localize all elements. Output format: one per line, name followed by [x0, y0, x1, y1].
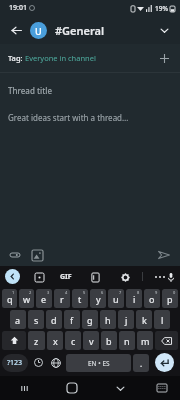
staticText: 3 — [47, 290, 50, 295]
button[interactable]: Shift — [2, 331, 26, 350]
button[interactable]: c — [65, 331, 81, 350]
button[interactable]: Emoji — [29, 351, 47, 374]
button[interactable]: k — [136, 310, 152, 329]
staticText: Tag: — [8, 53, 25, 63]
button[interactable]: Home — [48, 376, 96, 400]
button[interactable]: U — [30, 22, 47, 39]
staticText: Everyone in channel — [25, 53, 96, 63]
staticText: o — [149, 293, 155, 305]
button[interactable]: Add tag — [156, 50, 172, 66]
staticText: 4 — [65, 290, 68, 295]
button[interactable]: f — [64, 310, 80, 329]
button[interactable]: Close toolbar — [5, 269, 20, 284]
staticText: 6 — [101, 290, 104, 295]
button[interactable]: ?123 — [2, 354, 28, 372]
button[interactable]: More — [153, 270, 167, 284]
staticText: r — [60, 293, 64, 305]
button[interactable]: 3 — [36, 289, 52, 308]
staticText: w — [23, 293, 31, 305]
staticText: y — [96, 293, 101, 305]
staticText: g — [87, 314, 93, 326]
button[interactable]: 8 — [126, 289, 142, 308]
button[interactable]: Hide keyboard — [96, 376, 144, 400]
staticText: j — [125, 314, 128, 326]
staticText: 19:01 — [9, 3, 27, 13]
staticText: #General — [55, 23, 154, 38]
button[interactable]: v — [83, 331, 99, 350]
staticText: s — [34, 314, 39, 326]
staticText: c — [71, 335, 76, 347]
button[interactable]: 0 — [162, 289, 178, 308]
staticText: e — [41, 293, 47, 305]
button[interactable]: 7 — [108, 289, 124, 308]
staticText: EN • ES — [88, 359, 110, 368]
staticText: ?123 — [7, 358, 23, 368]
staticText: f — [70, 314, 74, 326]
button[interactable]: a — [10, 310, 26, 329]
button[interactable]: Settings — [118, 270, 132, 284]
staticText: . — [140, 358, 143, 369]
staticText: l — [161, 314, 164, 326]
button[interactable]: j — [118, 310, 134, 329]
button[interactable]: z — [28, 331, 45, 350]
button[interactable]: Tag: — [8, 53, 156, 63]
staticText: n — [124, 335, 130, 347]
staticText: 9 — [155, 290, 158, 295]
button[interactable]: x — [47, 331, 63, 350]
staticText: m — [141, 335, 150, 347]
button[interactable]: Stickers — [32, 270, 46, 284]
staticText: t — [78, 293, 82, 305]
button[interactable]: Back — [6, 20, 26, 40]
staticText: v — [89, 335, 94, 347]
button[interactable]: g — [82, 310, 98, 329]
button[interactable]: b — [101, 331, 117, 350]
button[interactable]: 5 — [72, 289, 88, 308]
staticText: 2 — [29, 290, 32, 295]
button[interactable]: d — [46, 310, 62, 329]
staticText: 8 — [137, 290, 140, 295]
button[interactable]: 6 — [90, 289, 106, 308]
button[interactable]: Clipboard — [88, 270, 102, 284]
button[interactable]: Send — [155, 246, 173, 264]
button[interactable]: EN • ES — [66, 354, 131, 372]
staticText: x — [53, 335, 58, 347]
staticText: 5 — [83, 290, 86, 295]
staticText: 19% — [155, 4, 168, 13]
button[interactable]: 2 — [19, 289, 34, 308]
button[interactable]: Enter — [155, 353, 174, 372]
button[interactable]: Backspace — [155, 331, 178, 350]
button[interactable]: s — [28, 310, 44, 329]
button[interactable]: Voice input — [167, 270, 175, 284]
staticText: i — [133, 293, 136, 305]
button[interactable]: l — [154, 310, 170, 329]
staticText: h — [105, 314, 111, 326]
staticText: d — [51, 314, 57, 326]
button[interactable]: Keyboard layout — [144, 376, 180, 400]
staticText: b — [106, 335, 112, 347]
staticText: z — [34, 335, 39, 347]
button[interactable]: Expand — [154, 20, 174, 40]
staticText: 1 — [12, 290, 15, 295]
button[interactable]: Thread title — [8, 85, 172, 96]
staticText: 0 — [173, 290, 176, 295]
button[interactable]: Image — [29, 247, 45, 263]
button[interactable]: 1 — [2, 289, 17, 308]
button[interactable]: m — [137, 331, 153, 350]
button[interactable]: n — [119, 331, 135, 350]
staticText: U — [35, 25, 42, 37]
staticText: 7 — [119, 290, 122, 295]
button[interactable]: Attach — [7, 247, 23, 263]
staticText: p — [167, 293, 173, 305]
button[interactable]: . — [133, 354, 149, 372]
button[interactable]: 9 — [144, 289, 160, 308]
button[interactable]: h — [100, 310, 116, 329]
staticText: GIF — [60, 272, 72, 282]
button[interactable]: Recents — [0, 376, 48, 400]
button[interactable]: Change language — [47, 351, 65, 374]
button[interactable]: 4 — [54, 289, 70, 308]
staticText: k — [142, 314, 147, 326]
button[interactable]: Great ideas start with a thread… — [8, 112, 172, 123]
staticText: a — [15, 314, 21, 326]
staticText: q — [7, 293, 13, 305]
button[interactable]: GIF — [60, 272, 72, 282]
